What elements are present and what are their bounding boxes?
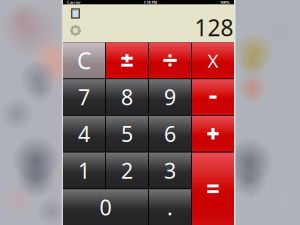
button[interactable] — [192, 152, 234, 225]
staticText: 8 — [121, 83, 133, 111]
staticText: 9 — [164, 83, 176, 111]
button[interactable] — [192, 116, 234, 152]
button[interactable]: 3 — [149, 152, 191, 188]
staticText: 5 — [121, 120, 133, 148]
staticText: 3 — [164, 156, 176, 185]
staticText: 4 — [78, 120, 90, 148]
staticText: 128 — [194, 12, 233, 42]
button[interactable]: 9 — [149, 79, 191, 115]
button[interactable]: 1 — [63, 152, 105, 188]
button[interactable] — [192, 79, 234, 115]
staticText: 6 — [164, 120, 176, 148]
button[interactable]: Paste — [70, 8, 81, 19]
button[interactable]: 2 — [106, 152, 148, 188]
button[interactable]: Settings — [70, 25, 81, 36]
button[interactable]: . — [149, 189, 191, 225]
button[interactable]: X — [192, 42, 234, 78]
button[interactable]: 5 — [106, 116, 148, 152]
button[interactable] — [149, 42, 191, 78]
staticText: C — [77, 45, 91, 75]
staticText: 0 — [99, 193, 111, 221]
button[interactable]: 7 — [63, 79, 105, 115]
button[interactable]: 8 — [106, 79, 148, 115]
staticText: . — [167, 193, 173, 221]
staticText: X — [207, 48, 218, 73]
button[interactable]: C — [63, 42, 105, 78]
staticText: 2 — [121, 156, 133, 185]
staticText: 100% — [220, 0, 230, 5]
staticText: 1:18 PM — [143, 0, 157, 5]
staticText: 1 — [78, 156, 90, 185]
button[interactable]: 4 — [63, 116, 105, 152]
button[interactable] — [106, 42, 148, 78]
staticText: Carrier — [67, 0, 81, 5]
staticText: 7 — [78, 83, 90, 111]
button[interactable]: 6 — [149, 116, 191, 152]
button[interactable]: 0 — [63, 189, 148, 225]
